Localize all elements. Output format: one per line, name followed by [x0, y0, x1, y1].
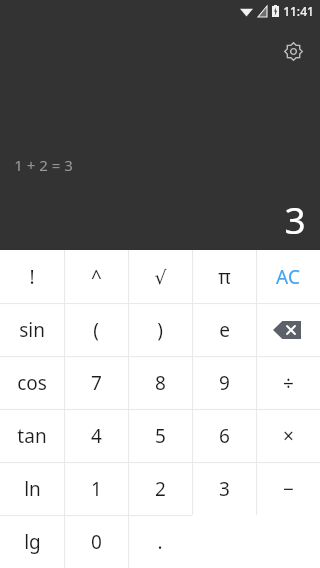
button[interactable]: ln: [0, 462, 64, 515]
button[interactable]: 1: [64, 462, 128, 515]
button[interactable]: e: [192, 303, 256, 356]
staticText: e: [219, 317, 230, 343]
staticText: 2: [155, 476, 166, 502]
button[interactable]: .: [128, 515, 192, 568]
button[interactable]: 9: [192, 356, 256, 409]
staticText: ×: [283, 423, 294, 449]
button[interactable]: lg: [0, 515, 64, 568]
staticText: .: [157, 529, 163, 555]
staticText: (: [93, 317, 99, 343]
staticText: ln: [24, 476, 41, 502]
staticText: 5: [155, 423, 166, 449]
staticText: 1: [91, 476, 102, 502]
button[interactable]: 0: [64, 515, 128, 568]
staticText: 1 + 2 = 3: [14, 155, 73, 175]
staticText: cos: [17, 370, 47, 396]
button[interactable]: −: [256, 462, 320, 515]
button[interactable]: 4: [64, 409, 128, 462]
button[interactable]: Backspace: [256, 303, 320, 356]
button[interactable]: AC: [256, 250, 320, 303]
staticText: 4: [91, 423, 102, 449]
button[interactable]: cos: [0, 356, 64, 409]
staticText: lg: [24, 529, 41, 555]
staticText: 3: [219, 476, 230, 502]
staticText: 0: [91, 529, 102, 555]
button[interactable]: 5: [128, 409, 192, 462]
staticText: √: [154, 266, 167, 288]
button[interactable]: ÷: [256, 356, 320, 409]
staticText: !: [29, 264, 35, 290]
staticText: ÷: [283, 370, 294, 396]
button[interactable]: ^: [64, 250, 128, 303]
staticText: 3: [284, 194, 306, 244]
staticText: 7: [91, 370, 102, 396]
other: Backspace: [273, 321, 303, 339]
button[interactable]: !: [0, 250, 64, 303]
staticText: 11:41: [283, 3, 314, 19]
button[interactable]: 6: [192, 409, 256, 462]
staticText: ): [157, 317, 163, 343]
button[interactable]: (: [64, 303, 128, 356]
staticText: π: [218, 264, 231, 290]
button[interactable]: 8: [128, 356, 192, 409]
staticText: 9: [219, 370, 230, 396]
button[interactable]: Settings: [278, 36, 308, 66]
button[interactable]: √: [128, 250, 192, 303]
staticText: ^: [91, 264, 102, 290]
button[interactable]: 3: [192, 462, 256, 515]
button[interactable]: ): [128, 303, 192, 356]
staticText: 8: [155, 370, 166, 396]
staticText: −: [283, 476, 294, 502]
button[interactable]: ×: [256, 409, 320, 462]
staticText: sin: [19, 317, 45, 343]
button[interactable]: π: [192, 250, 256, 303]
staticText: 6: [219, 423, 230, 449]
button[interactable]: tan: [0, 409, 64, 462]
staticText: tan: [17, 423, 47, 449]
button[interactable]: 2: [128, 462, 192, 515]
button[interactable]: sin: [0, 303, 64, 356]
staticText: AC: [276, 264, 300, 290]
button[interactable]: 7: [64, 356, 128, 409]
